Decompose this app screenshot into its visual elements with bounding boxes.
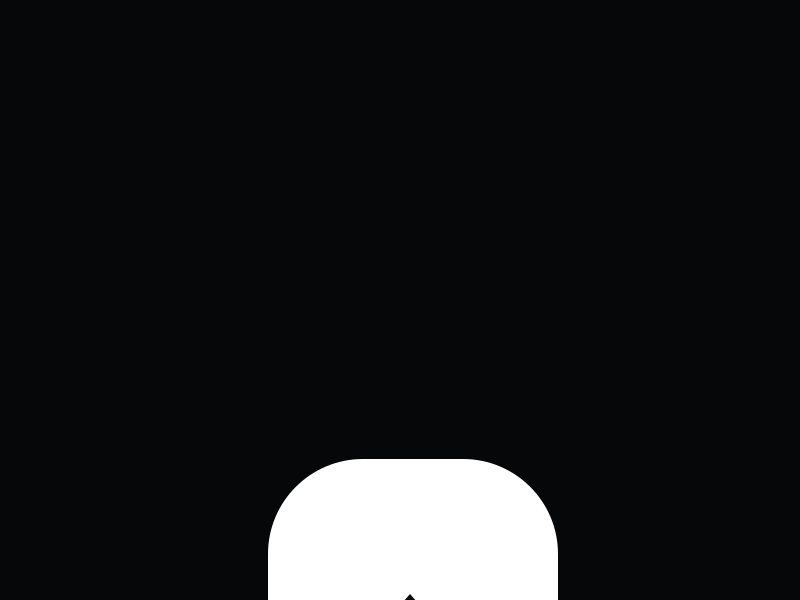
button[interactable]: Action: [268, 459, 558, 600]
